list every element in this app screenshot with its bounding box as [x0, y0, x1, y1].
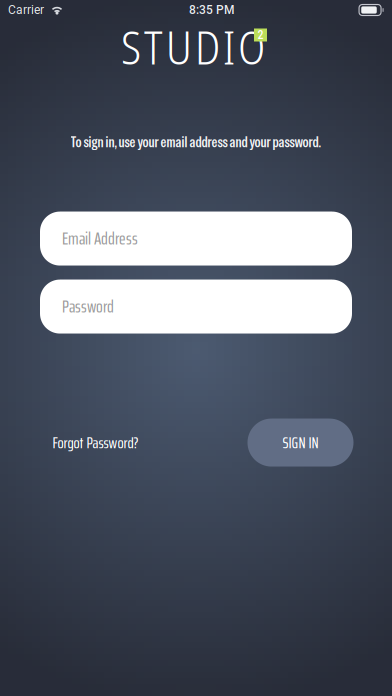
staticText: To sign in, use your email address and y…	[70, 132, 321, 152]
button[interactable]: SIGN IN	[247, 419, 353, 467]
button[interactable]: Email Address	[40, 212, 352, 266]
staticText: 2	[257, 28, 263, 42]
button[interactable]: Password	[40, 280, 352, 334]
staticText: Email Address	[62, 225, 138, 252]
staticText: 8:35 PM	[189, 3, 234, 17]
staticText: Forgot Password?	[52, 430, 138, 455]
staticText: Password	[62, 293, 114, 320]
staticText: Carrier	[8, 3, 44, 17]
staticText: STUDIO	[121, 16, 265, 78]
button[interactable]: Forgot Password?	[52, 419, 152, 467]
staticText: SIGN IN	[282, 430, 318, 455]
